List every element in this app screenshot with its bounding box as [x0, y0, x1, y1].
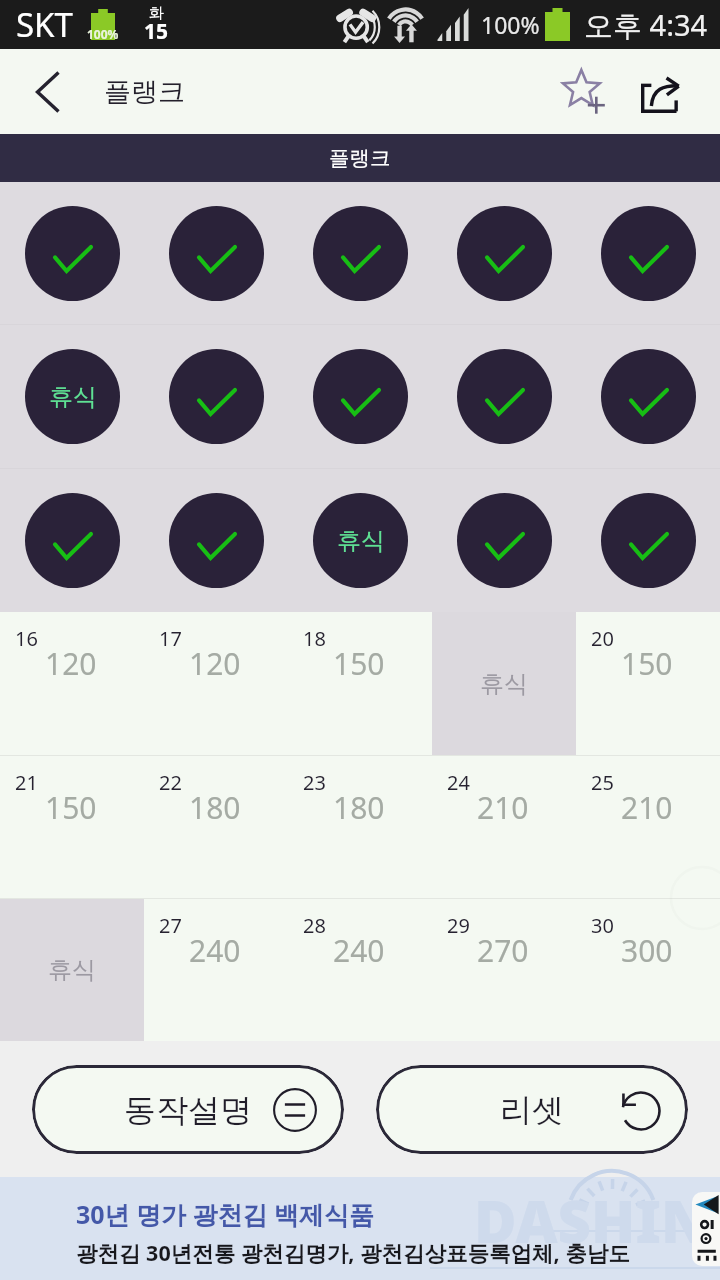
button[interactable] — [288, 182, 432, 324]
staticText: 150 — [333, 643, 385, 684]
button[interactable]: 휴식 — [0, 325, 144, 468]
staticText: 180 — [189, 787, 241, 828]
button[interactable]: 23 — [288, 756, 432, 898]
staticText: 270 — [477, 930, 529, 971]
button[interactable]: 20 — [576, 612, 720, 755]
button[interactable]: 리셋 — [376, 1065, 688, 1154]
button[interactable] — [144, 182, 288, 324]
staticText: 20 — [591, 625, 614, 652]
button[interactable]: Ad — [692, 1192, 720, 1266]
button[interactable] — [576, 469, 720, 612]
staticText: 휴식 — [49, 382, 97, 412]
staticText: 29 — [447, 912, 470, 939]
staticText: 100% — [87, 26, 119, 42]
staticText: 휴식 — [337, 526, 385, 556]
button[interactable]: 18 — [288, 612, 432, 755]
staticText: 휴식 — [48, 955, 96, 985]
button[interactable] — [0, 469, 144, 612]
staticText: 오후 4:34 — [584, 5, 708, 45]
staticText: 25 — [591, 769, 614, 796]
staticText: 300 — [621, 930, 673, 971]
staticText: 플랭크 — [329, 145, 391, 171]
staticText: 리셋 — [500, 1090, 564, 1130]
button[interactable]: 동작설명 — [32, 1065, 344, 1154]
staticText: 플랭크 — [104, 75, 185, 109]
staticText: 28 — [303, 912, 326, 939]
staticText: 16 — [15, 625, 38, 652]
staticText: 21 — [15, 769, 38, 796]
staticText: 동작설명 — [124, 1090, 252, 1130]
button[interactable] — [432, 469, 576, 612]
staticText: 30 — [591, 912, 614, 939]
button[interactable] — [144, 469, 288, 612]
button[interactable] — [432, 182, 576, 324]
button[interactable]: 28 — [288, 899, 432, 1041]
staticText: 17 — [159, 625, 182, 652]
button[interactable]: 휴식 — [432, 612, 576, 755]
staticText: 240 — [189, 930, 241, 971]
button[interactable]: 휴식 — [288, 469, 432, 612]
button[interactable] — [144, 325, 288, 468]
button[interactable] — [576, 182, 720, 324]
button[interactable]: Share — [632, 49, 720, 134]
staticText: 240 — [333, 930, 385, 971]
staticText: 휴식 — [480, 669, 528, 699]
staticText: 210 — [621, 787, 673, 828]
button[interactable]: 24 — [432, 756, 576, 898]
button[interactable]: 27 — [144, 899, 288, 1041]
button[interactable]: 16 — [0, 612, 144, 755]
staticText: 23 — [303, 769, 326, 796]
staticText: 15 — [144, 17, 169, 46]
button[interactable] — [576, 325, 720, 468]
button[interactable]: 22 — [144, 756, 288, 898]
button[interactable]: Add to favorites — [535, 49, 632, 134]
staticText: SKT — [16, 2, 73, 47]
button[interactable]: 21 — [0, 756, 144, 898]
staticText: 150 — [621, 643, 673, 684]
button[interactable]: 29 — [432, 899, 576, 1041]
staticText: 210 — [477, 787, 529, 828]
button[interactable]: 휴식 — [0, 899, 144, 1041]
staticText: 화 — [149, 4, 164, 23]
staticText: 120 — [189, 643, 241, 684]
button[interactable]: 30 — [576, 899, 720, 1041]
button[interactable] — [0, 182, 144, 324]
staticText: 광천김 30년전통 광천김명가, 광천김상표등록업체, 충남도 — [76, 1238, 630, 1267]
button[interactable]: 25 — [576, 756, 720, 898]
button[interactable]: Back — [0, 49, 95, 134]
button[interactable]: DASHIN — [0, 1177, 720, 1280]
button[interactable]: 17 — [144, 612, 288, 755]
button[interactable] — [288, 325, 432, 468]
button[interactable] — [432, 325, 576, 468]
staticText: 24 — [447, 769, 470, 796]
staticText: DASHIN — [474, 1181, 710, 1260]
staticText: 27 — [159, 912, 182, 939]
staticText: 100% — [481, 9, 540, 40]
staticText: 120 — [45, 643, 97, 684]
staticText: 22 — [159, 769, 182, 796]
staticText: 30년 명가 광천김 백제식품 — [76, 1197, 375, 1231]
staticText: 180 — [333, 787, 385, 828]
staticText: 18 — [303, 625, 326, 652]
staticText: 150 — [45, 787, 97, 828]
